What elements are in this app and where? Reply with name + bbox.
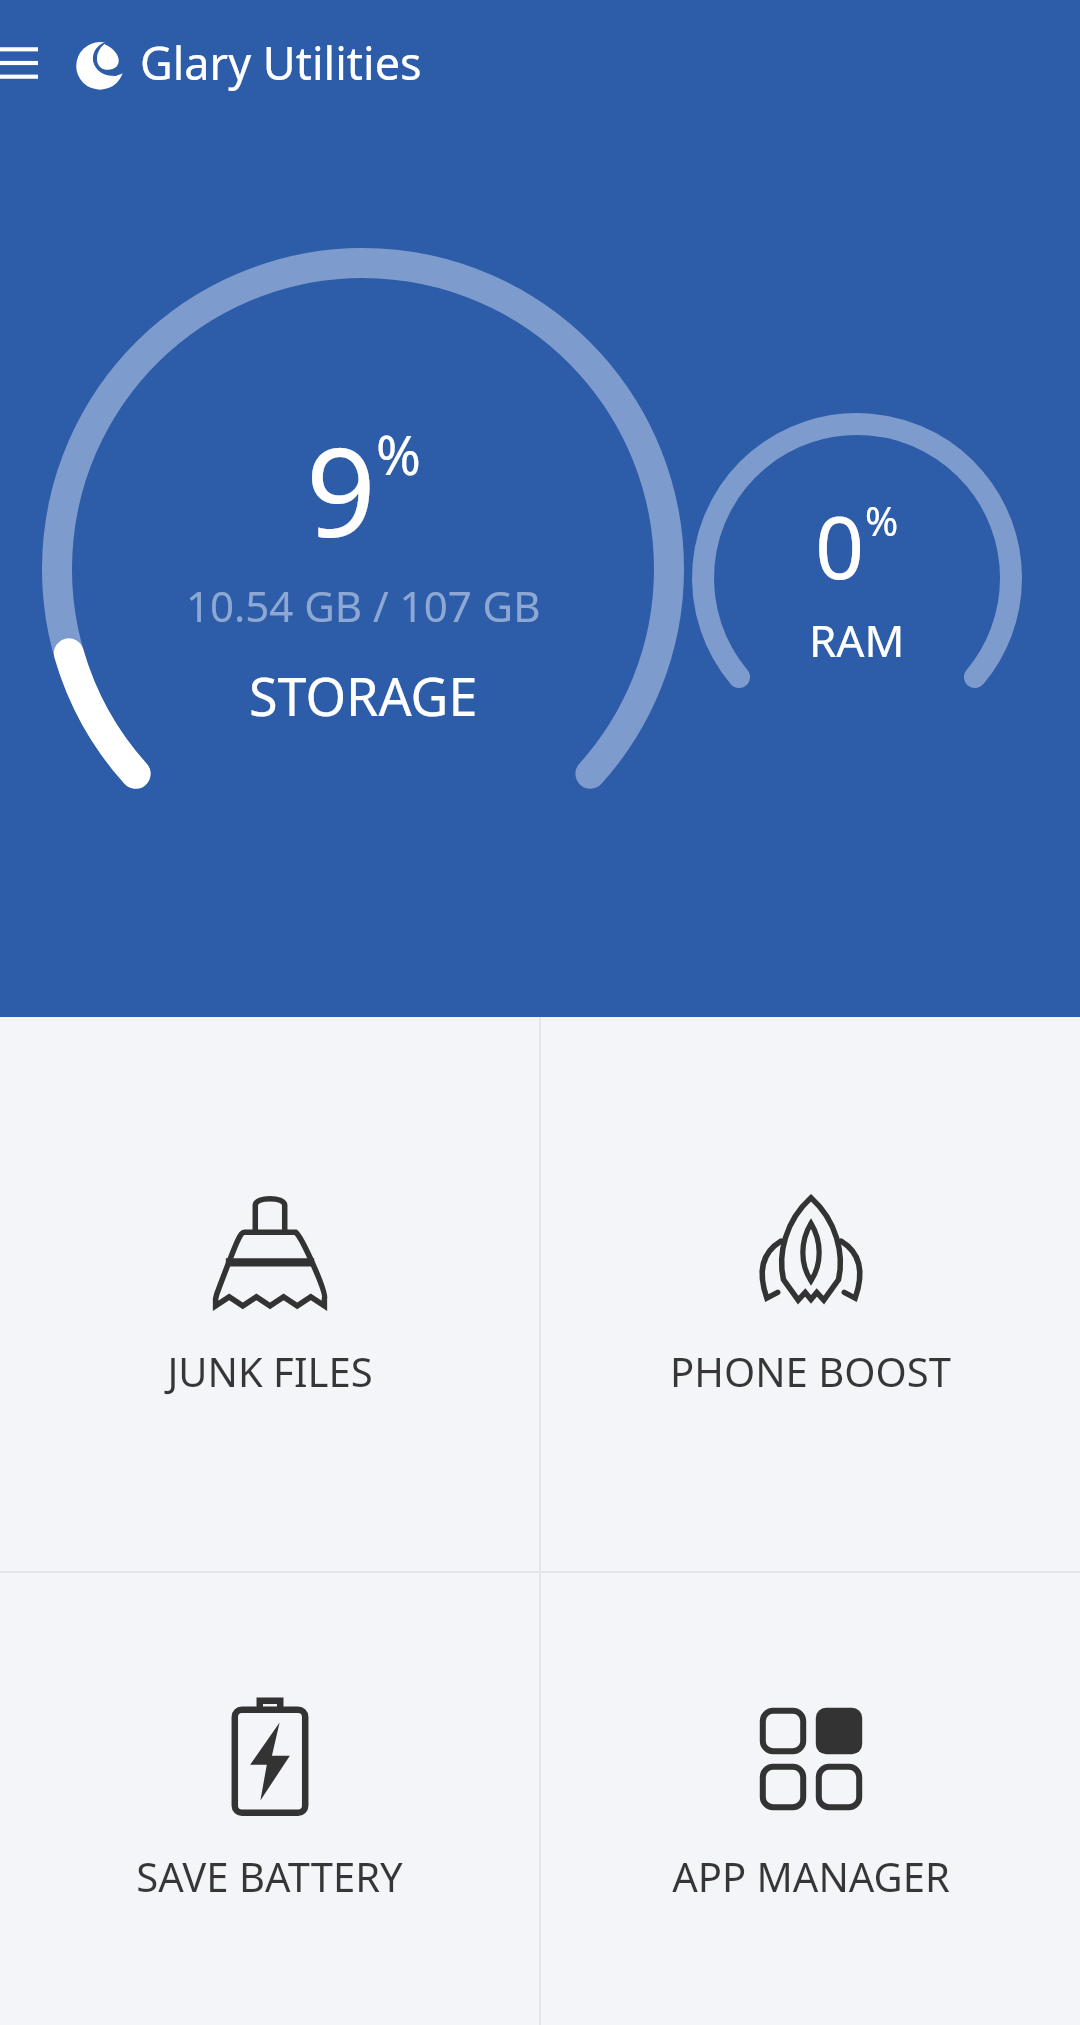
staticText: 10.54 GB / 107 GB [186, 577, 541, 634]
button[interactable]: PHONE BOOST [541, 1017, 1080, 1571]
button[interactable]: Open navigation menu [0, 33, 46, 93]
button[interactable]: APP MANAGER [541, 1573, 1080, 2025]
staticText: APP MANAGER [672, 1849, 950, 1903]
staticText: 0 [815, 487, 865, 604]
staticText: % [865, 493, 899, 547]
button[interactable]: SAVE BATTERY [0, 1573, 539, 2025]
staticText: RAM [809, 610, 905, 670]
staticText: STORAGE [249, 660, 478, 731]
staticText: % [376, 417, 421, 491]
staticText: Glary Utilities [140, 32, 422, 93]
staticText: JUNK FILES [167, 1344, 373, 1398]
button[interactable] [42, 248, 684, 890]
staticText: PHONE BOOST [670, 1344, 951, 1398]
staticText: SAVE BATTERY [136, 1849, 403, 1903]
button[interactable] [692, 413, 1022, 743]
button[interactable]: JUNK FILES [0, 1017, 539, 1571]
staticText: 9 [306, 407, 376, 573]
